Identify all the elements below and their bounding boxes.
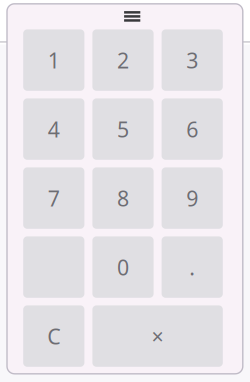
staticText: 5: [117, 115, 129, 143]
button[interactable]: 6: [162, 98, 223, 160]
staticText: 3: [186, 46, 198, 74]
staticText: 6: [186, 115, 198, 143]
button[interactable]: 5: [92, 98, 154, 160]
staticText: 9: [186, 184, 198, 212]
button[interactable]: .: [162, 236, 223, 298]
button[interactable]: Menu: [119, 6, 145, 27]
button[interactable]: 0: [92, 236, 154, 298]
staticText: ×: [152, 322, 164, 350]
button[interactable]: 3: [162, 29, 223, 91]
button[interactable]: 2: [92, 29, 154, 91]
staticText: 7: [48, 184, 60, 212]
staticText: 4: [48, 115, 60, 143]
button[interactable]: ×: [92, 305, 223, 367]
button[interactable]: 7: [23, 167, 84, 229]
staticText: 0: [117, 253, 129, 281]
button[interactable]: 9: [162, 167, 223, 229]
staticText: 1: [48, 46, 60, 74]
staticText: .: [189, 253, 195, 281]
staticText: C: [47, 322, 60, 350]
button[interactable]: 8: [92, 167, 154, 229]
button[interactable]: C: [23, 305, 84, 367]
staticText: 2: [117, 46, 129, 74]
staticText: 8: [117, 184, 129, 212]
button[interactable]: 4: [23, 98, 84, 160]
button[interactable]: 1: [23, 29, 84, 91]
